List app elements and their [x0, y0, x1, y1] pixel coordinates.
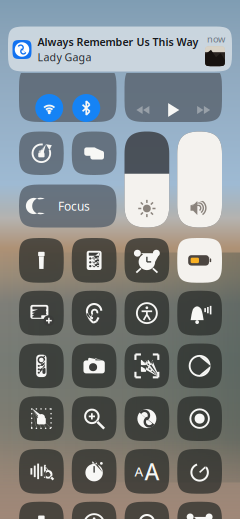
button[interactable]: Brightness — [124, 131, 169, 227]
button[interactable]: Flashlight — [19, 502, 64, 519]
button[interactable]: Play — [161, 98, 185, 122]
button[interactable]: Timer — [177, 449, 222, 494]
button[interactable]: Alarm — [124, 238, 169, 283]
staticText: A — [144, 456, 159, 486]
button[interactable]: Flashlight — [19, 238, 64, 283]
button[interactable]: Quick Note — [19, 291, 64, 336]
button[interactable]: Accessibility — [124, 291, 169, 336]
staticText: Always Remember Us This Way — [37, 35, 198, 49]
button[interactable]: Bluetooth — [72, 94, 100, 122]
button[interactable]: Next track — [192, 98, 216, 122]
button[interactable]: Always Remember Us This Way — [8, 26, 232, 71]
button[interactable]: Previous track — [131, 98, 155, 122]
button[interactable]: Dark Mode — [177, 343, 222, 388]
staticText: A — [134, 462, 143, 480]
button[interactable]: Accessibility Shortcuts — [72, 502, 117, 519]
button[interactable]: Hearing — [124, 502, 169, 519]
button[interactable]: Guided Access — [19, 396, 64, 441]
button[interactable]: Camera — [72, 343, 117, 388]
button[interactable]: Focus — [19, 184, 116, 227]
staticText: now — [207, 33, 225, 45]
staticText: Lady Gaga — [37, 50, 91, 64]
button[interactable]: Screen Recording — [177, 396, 222, 441]
button[interactable]: Rotation Lock — [19, 131, 64, 175]
staticText: Focus — [58, 198, 90, 214]
button[interactable]: Calculator — [72, 238, 117, 283]
button[interactable]: Apple TV Remote — [19, 343, 64, 388]
button[interactable]: Sound Recognition — [177, 291, 222, 336]
button[interactable]: Screen Mirroring — [72, 131, 117, 175]
button[interactable]: Low Power Mode — [177, 238, 222, 283]
button[interactable]: Hearing — [72, 291, 117, 336]
button[interactable]: Stopwatch — [72, 449, 117, 494]
button[interactable]: Text Size — [124, 449, 169, 494]
button[interactable]: Music Recognition — [124, 396, 169, 441]
button[interactable]: Code Scanner — [124, 343, 169, 388]
button[interactable]: Wi-Fi — [35, 94, 63, 122]
button[interactable]: Sound Detection — [19, 449, 64, 494]
button[interactable]: Volume — [177, 131, 222, 227]
button[interactable]: Alarm — [177, 502, 222, 519]
button[interactable]: Magnifier — [72, 396, 117, 441]
